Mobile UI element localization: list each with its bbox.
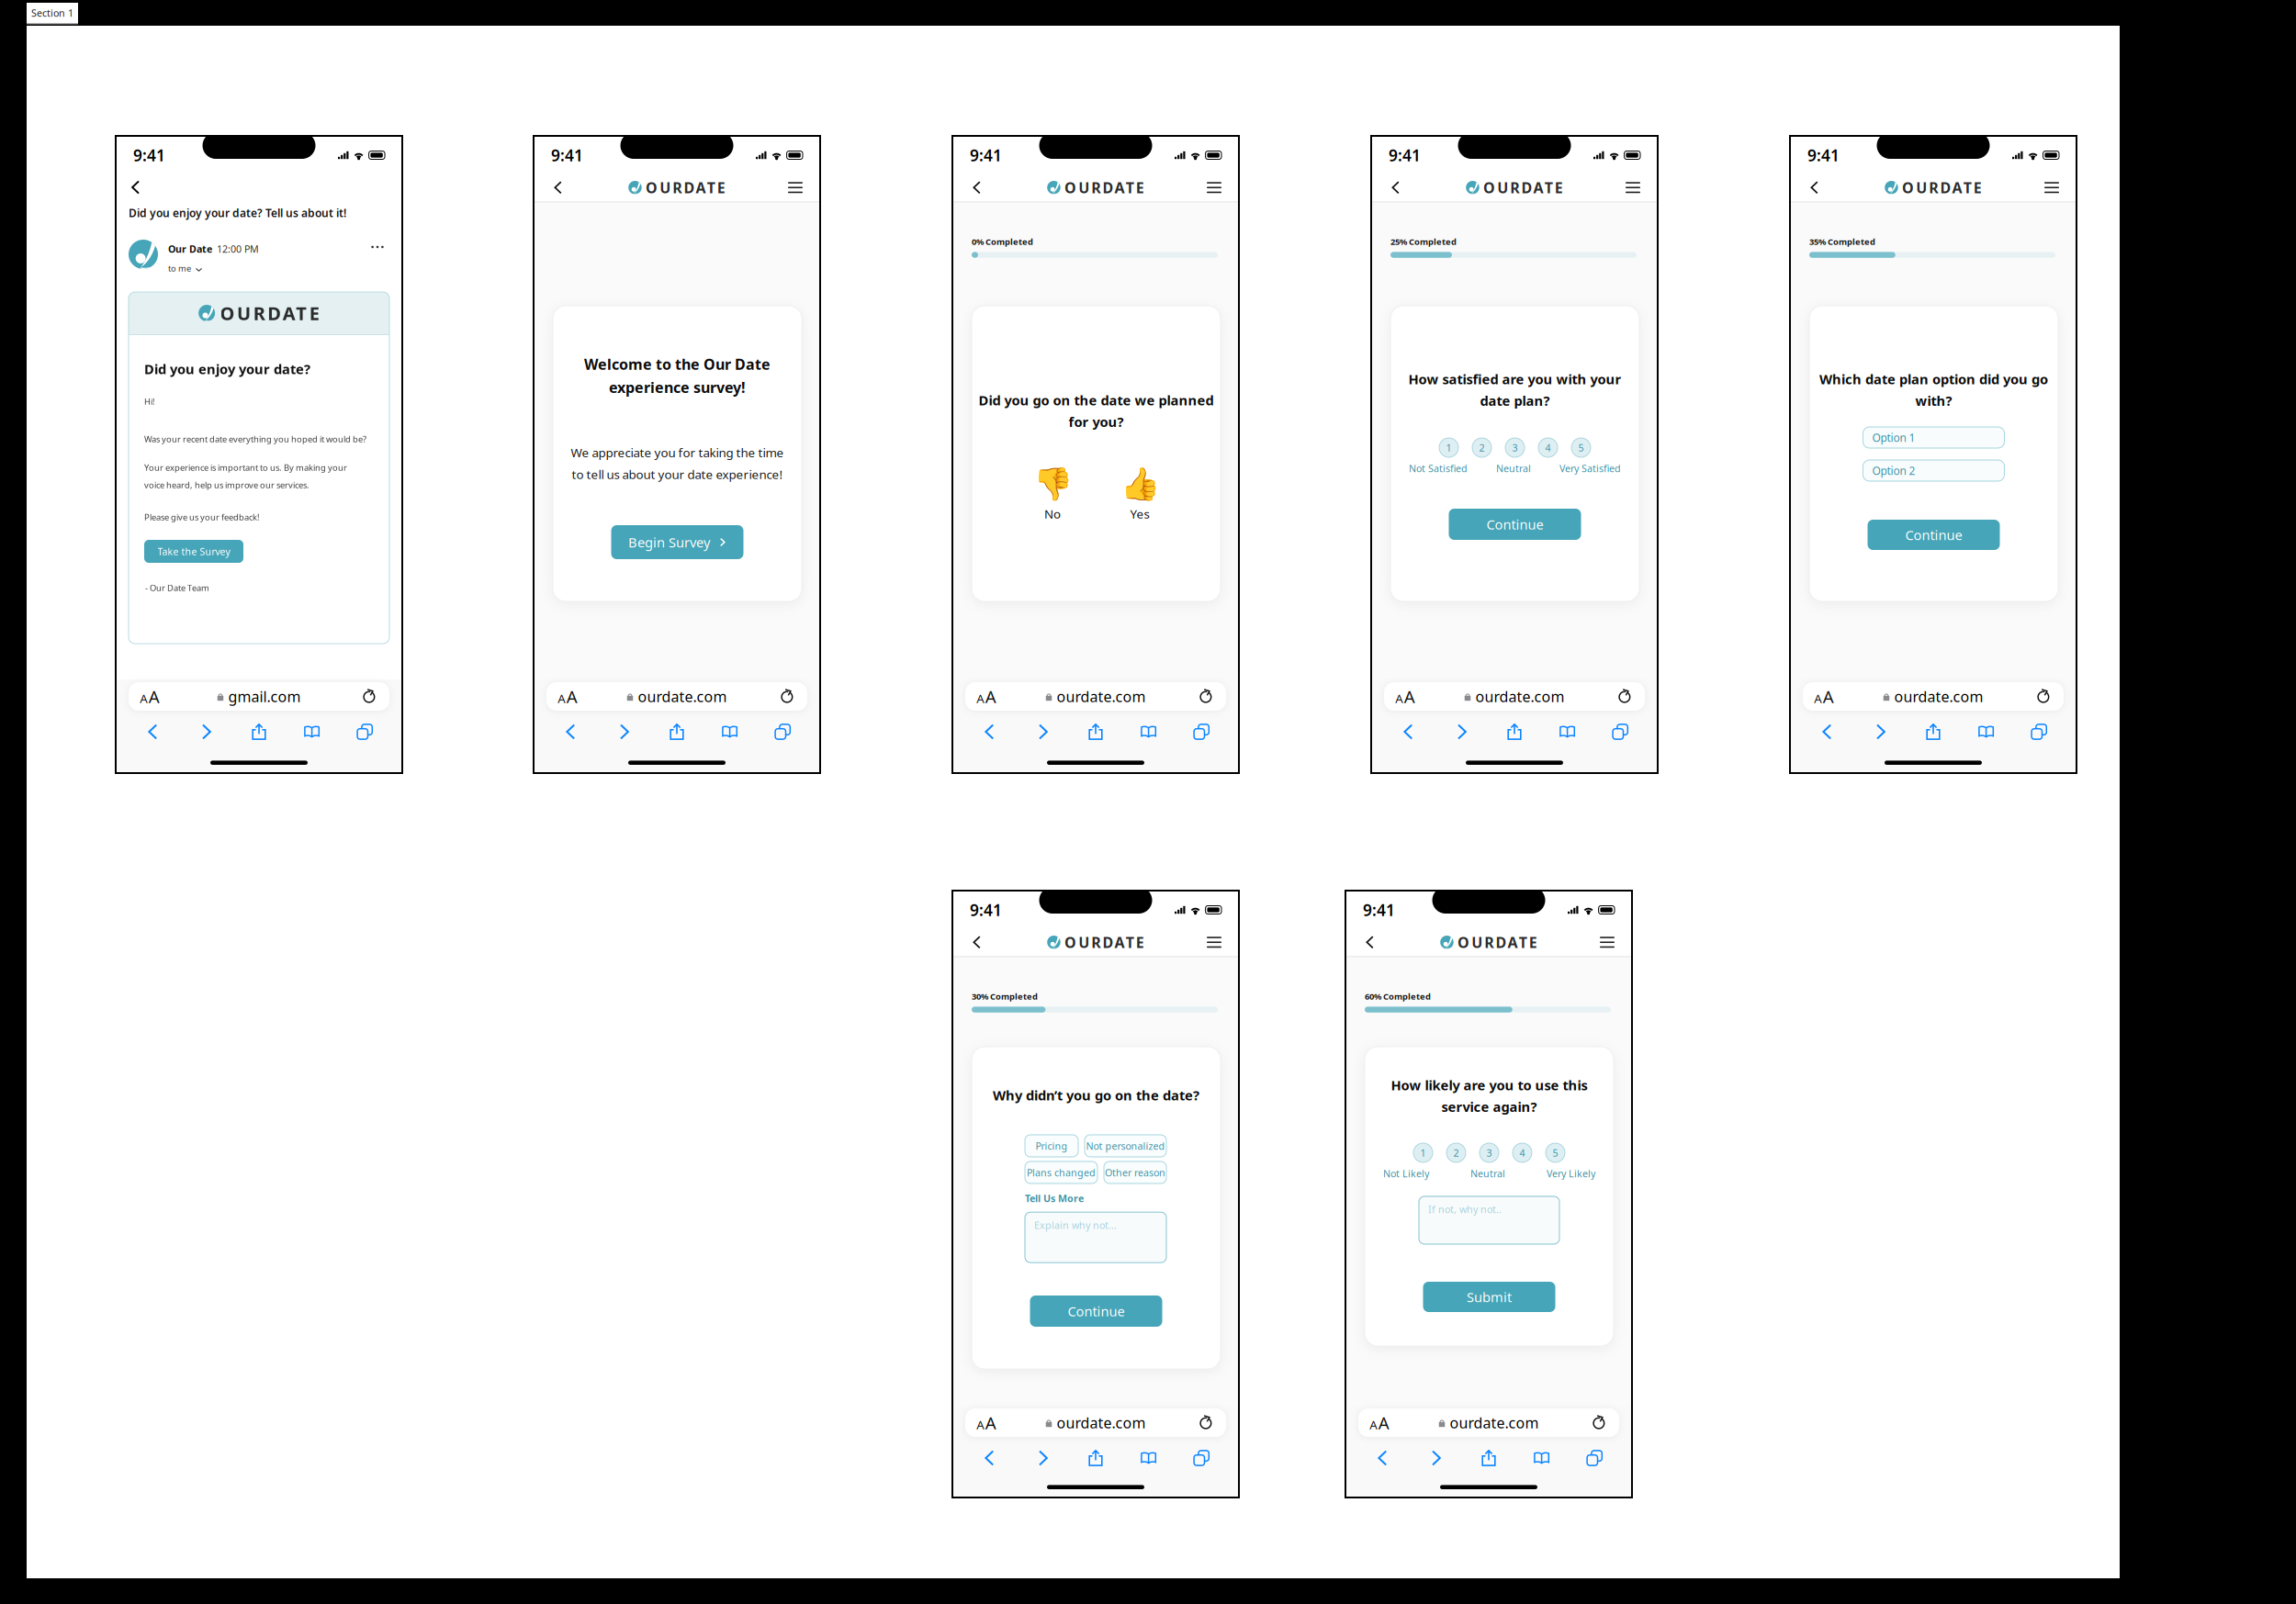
button[interactable]: Text size bbox=[129, 682, 171, 711]
button[interactable]: Text size bbox=[1803, 682, 1845, 711]
button[interactable]: Tabs bbox=[1594, 718, 1647, 746]
button[interactable]: Reload bbox=[1186, 682, 1226, 711]
button[interactable]: Continue bbox=[1868, 520, 2000, 550]
button[interactable]: Share bbox=[1462, 1444, 1515, 1472]
button[interactable]: Forward bbox=[1409, 1444, 1462, 1472]
button[interactable]: Back bbox=[1802, 175, 1828, 200]
button[interactable]: Forward bbox=[1854, 718, 1907, 746]
staticText: 2 bbox=[1453, 1146, 1459, 1159]
button[interactable]: Bookmarks bbox=[703, 718, 756, 746]
button[interactable]: Back bbox=[1357, 929, 1383, 955]
button[interactable]: More options bbox=[366, 236, 389, 258]
button[interactable]: Bookmarks bbox=[1122, 1444, 1175, 1472]
staticText: ourdate.com bbox=[1057, 687, 1146, 706]
button[interactable]: 5 bbox=[1546, 1143, 1565, 1162]
staticText: A bbox=[1404, 685, 1415, 708]
button[interactable]: Text size bbox=[1384, 682, 1426, 711]
button[interactable]: Menu bbox=[2039, 175, 2065, 200]
button[interactable]: Text size bbox=[546, 682, 589, 711]
button[interactable]: Forward bbox=[598, 718, 650, 746]
button[interactable]: Back bbox=[124, 175, 148, 199]
button[interactable]: Reload bbox=[767, 682, 807, 711]
staticText: 9:41 bbox=[1389, 145, 1421, 166]
button[interactable]: Forward bbox=[1016, 1444, 1069, 1472]
button[interactable]: Share bbox=[233, 718, 285, 746]
button[interactable]: 2 bbox=[1472, 438, 1491, 457]
button[interactable]: Tabs bbox=[1568, 1444, 1621, 1472]
button[interactable]: Back bbox=[964, 175, 990, 200]
button[interactable]: Text size bbox=[965, 1408, 1007, 1437]
staticText: 9:41 bbox=[970, 145, 1002, 166]
button[interactable]: Text size bbox=[1358, 1408, 1401, 1437]
button[interactable]: Menu bbox=[1620, 175, 1646, 200]
button[interactable]: 1 bbox=[1413, 1143, 1433, 1162]
staticText: with? bbox=[1915, 392, 1952, 409]
button[interactable]: Back bbox=[546, 175, 571, 200]
button[interactable]: Tabs bbox=[1175, 1444, 1228, 1472]
button[interactable]: Option 1 bbox=[1863, 427, 2004, 448]
button[interactable]: Back bbox=[1382, 718, 1435, 746]
button[interactable]: Back bbox=[963, 718, 1016, 746]
button[interactable]: 5 bbox=[1571, 438, 1591, 457]
staticText: Take the Survey bbox=[158, 545, 230, 558]
button[interactable]: Take the Survey bbox=[144, 540, 243, 563]
button[interactable]: Bookmarks bbox=[1515, 1444, 1568, 1472]
button[interactable]: 3 bbox=[1505, 438, 1525, 457]
button[interactable]: Bookmarks bbox=[1960, 718, 2013, 746]
button[interactable]: Back bbox=[1356, 1444, 1409, 1472]
button[interactable]: Reload bbox=[1579, 1408, 1619, 1437]
button[interactable]: Back bbox=[964, 929, 990, 955]
button[interactable]: Not personalized bbox=[1085, 1135, 1166, 1157]
button[interactable]: Submit bbox=[1423, 1282, 1555, 1312]
staticText: ourdate.com bbox=[1057, 1413, 1146, 1432]
button[interactable]: Back bbox=[545, 718, 598, 746]
staticText: 30% Completed bbox=[972, 991, 1038, 1002]
button[interactable]: Back bbox=[1801, 718, 1854, 746]
button[interactable]: Bookmarks bbox=[285, 718, 338, 746]
button[interactable]: Share bbox=[650, 718, 703, 746]
button[interactable]: Back bbox=[1383, 175, 1409, 200]
button[interactable]: If not, why not.. bbox=[1419, 1196, 1559, 1244]
button[interactable]: Forward bbox=[180, 718, 233, 746]
button[interactable]: Share bbox=[1069, 1444, 1122, 1472]
button[interactable]: Text size bbox=[965, 682, 1007, 711]
button[interactable]: Bookmarks bbox=[1122, 718, 1175, 746]
button[interactable]: Explain why not... bbox=[1025, 1212, 1166, 1263]
button[interactable]: Share bbox=[1907, 718, 1960, 746]
button[interactable]: Menu bbox=[1594, 929, 1620, 955]
button[interactable]: Continue bbox=[1449, 509, 1581, 540]
button[interactable]: 4 bbox=[1513, 1143, 1532, 1162]
button[interactable]: Pricing bbox=[1025, 1135, 1078, 1157]
button[interactable]: Share bbox=[1069, 718, 1122, 746]
button[interactable]: Continue bbox=[1030, 1296, 1162, 1327]
button[interactable]: Tabs bbox=[338, 718, 391, 746]
button[interactable]: Menu bbox=[1201, 929, 1227, 955]
button[interactable]: 4 bbox=[1538, 438, 1558, 457]
button[interactable]: Begin Survey bbox=[611, 525, 743, 559]
button[interactable]: 3 bbox=[1480, 1143, 1499, 1162]
button[interactable]: 👍 bbox=[1120, 465, 1159, 522]
button[interactable]: Reload bbox=[1604, 682, 1645, 711]
button[interactable]: 2 bbox=[1446, 1143, 1466, 1162]
button[interactable]: Menu bbox=[782, 175, 808, 200]
button[interactable]: 1 bbox=[1439, 438, 1458, 457]
button[interactable]: Tabs bbox=[1175, 718, 1228, 746]
button[interactable]: Tabs bbox=[2013, 718, 2065, 746]
button[interactable]: Reload bbox=[2023, 682, 2064, 711]
button[interactable]: Back bbox=[963, 1444, 1016, 1472]
button[interactable]: Reload bbox=[1186, 1408, 1226, 1437]
staticText: date plan? bbox=[1480, 392, 1550, 409]
button[interactable]: Share bbox=[1488, 718, 1541, 746]
button[interactable]: Back bbox=[127, 718, 180, 746]
button[interactable]: Reload bbox=[349, 682, 389, 711]
button[interactable]: Bookmarks bbox=[1541, 718, 1594, 746]
button[interactable]: Menu bbox=[1201, 175, 1227, 200]
button[interactable]: Forward bbox=[1435, 718, 1488, 746]
button[interactable]: Plans changed bbox=[1025, 1161, 1097, 1183]
button[interactable]: Other reason bbox=[1104, 1161, 1166, 1183]
button[interactable]: Option 2 bbox=[1863, 460, 2004, 481]
button[interactable]: Forward bbox=[1016, 718, 1069, 746]
staticText: OURDATE bbox=[1902, 178, 1982, 197]
button[interactable]: 👎 bbox=[1033, 465, 1072, 522]
button[interactable]: Tabs bbox=[756, 718, 809, 746]
